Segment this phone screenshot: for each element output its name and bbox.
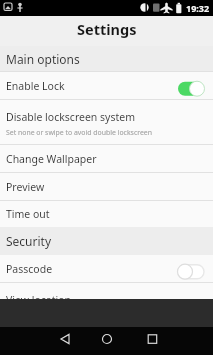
staticText: Security (6, 233, 52, 249)
button[interactable]: Enable Lock (0, 72, 213, 99)
staticText: Preview (6, 180, 45, 194)
button[interactable] (0, 327, 213, 355)
staticText: Time out (6, 207, 50, 221)
staticText: Passcode (6, 262, 53, 276)
button[interactable]: View location (0, 283, 213, 317)
button[interactable]: Passcode (0, 255, 213, 282)
button[interactable]: Disable lockscreen system (0, 100, 213, 144)
staticText: 19:32 (186, 2, 210, 14)
staticText: Set none or swipe to avoid double locksc… (6, 128, 152, 137)
staticText: Change Wallpaper (6, 152, 97, 166)
button[interactable]: Time out (0, 201, 213, 227)
staticText: View location (6, 293, 72, 307)
button[interactable]: Preview (0, 173, 213, 200)
staticText: Enable Lock (6, 79, 65, 93)
button[interactable]: Change Wallpaper (0, 145, 213, 172)
staticText: Settings (77, 19, 137, 39)
staticText: Main options (6, 51, 80, 67)
staticText: Disable lockscreen system (6, 110, 136, 124)
